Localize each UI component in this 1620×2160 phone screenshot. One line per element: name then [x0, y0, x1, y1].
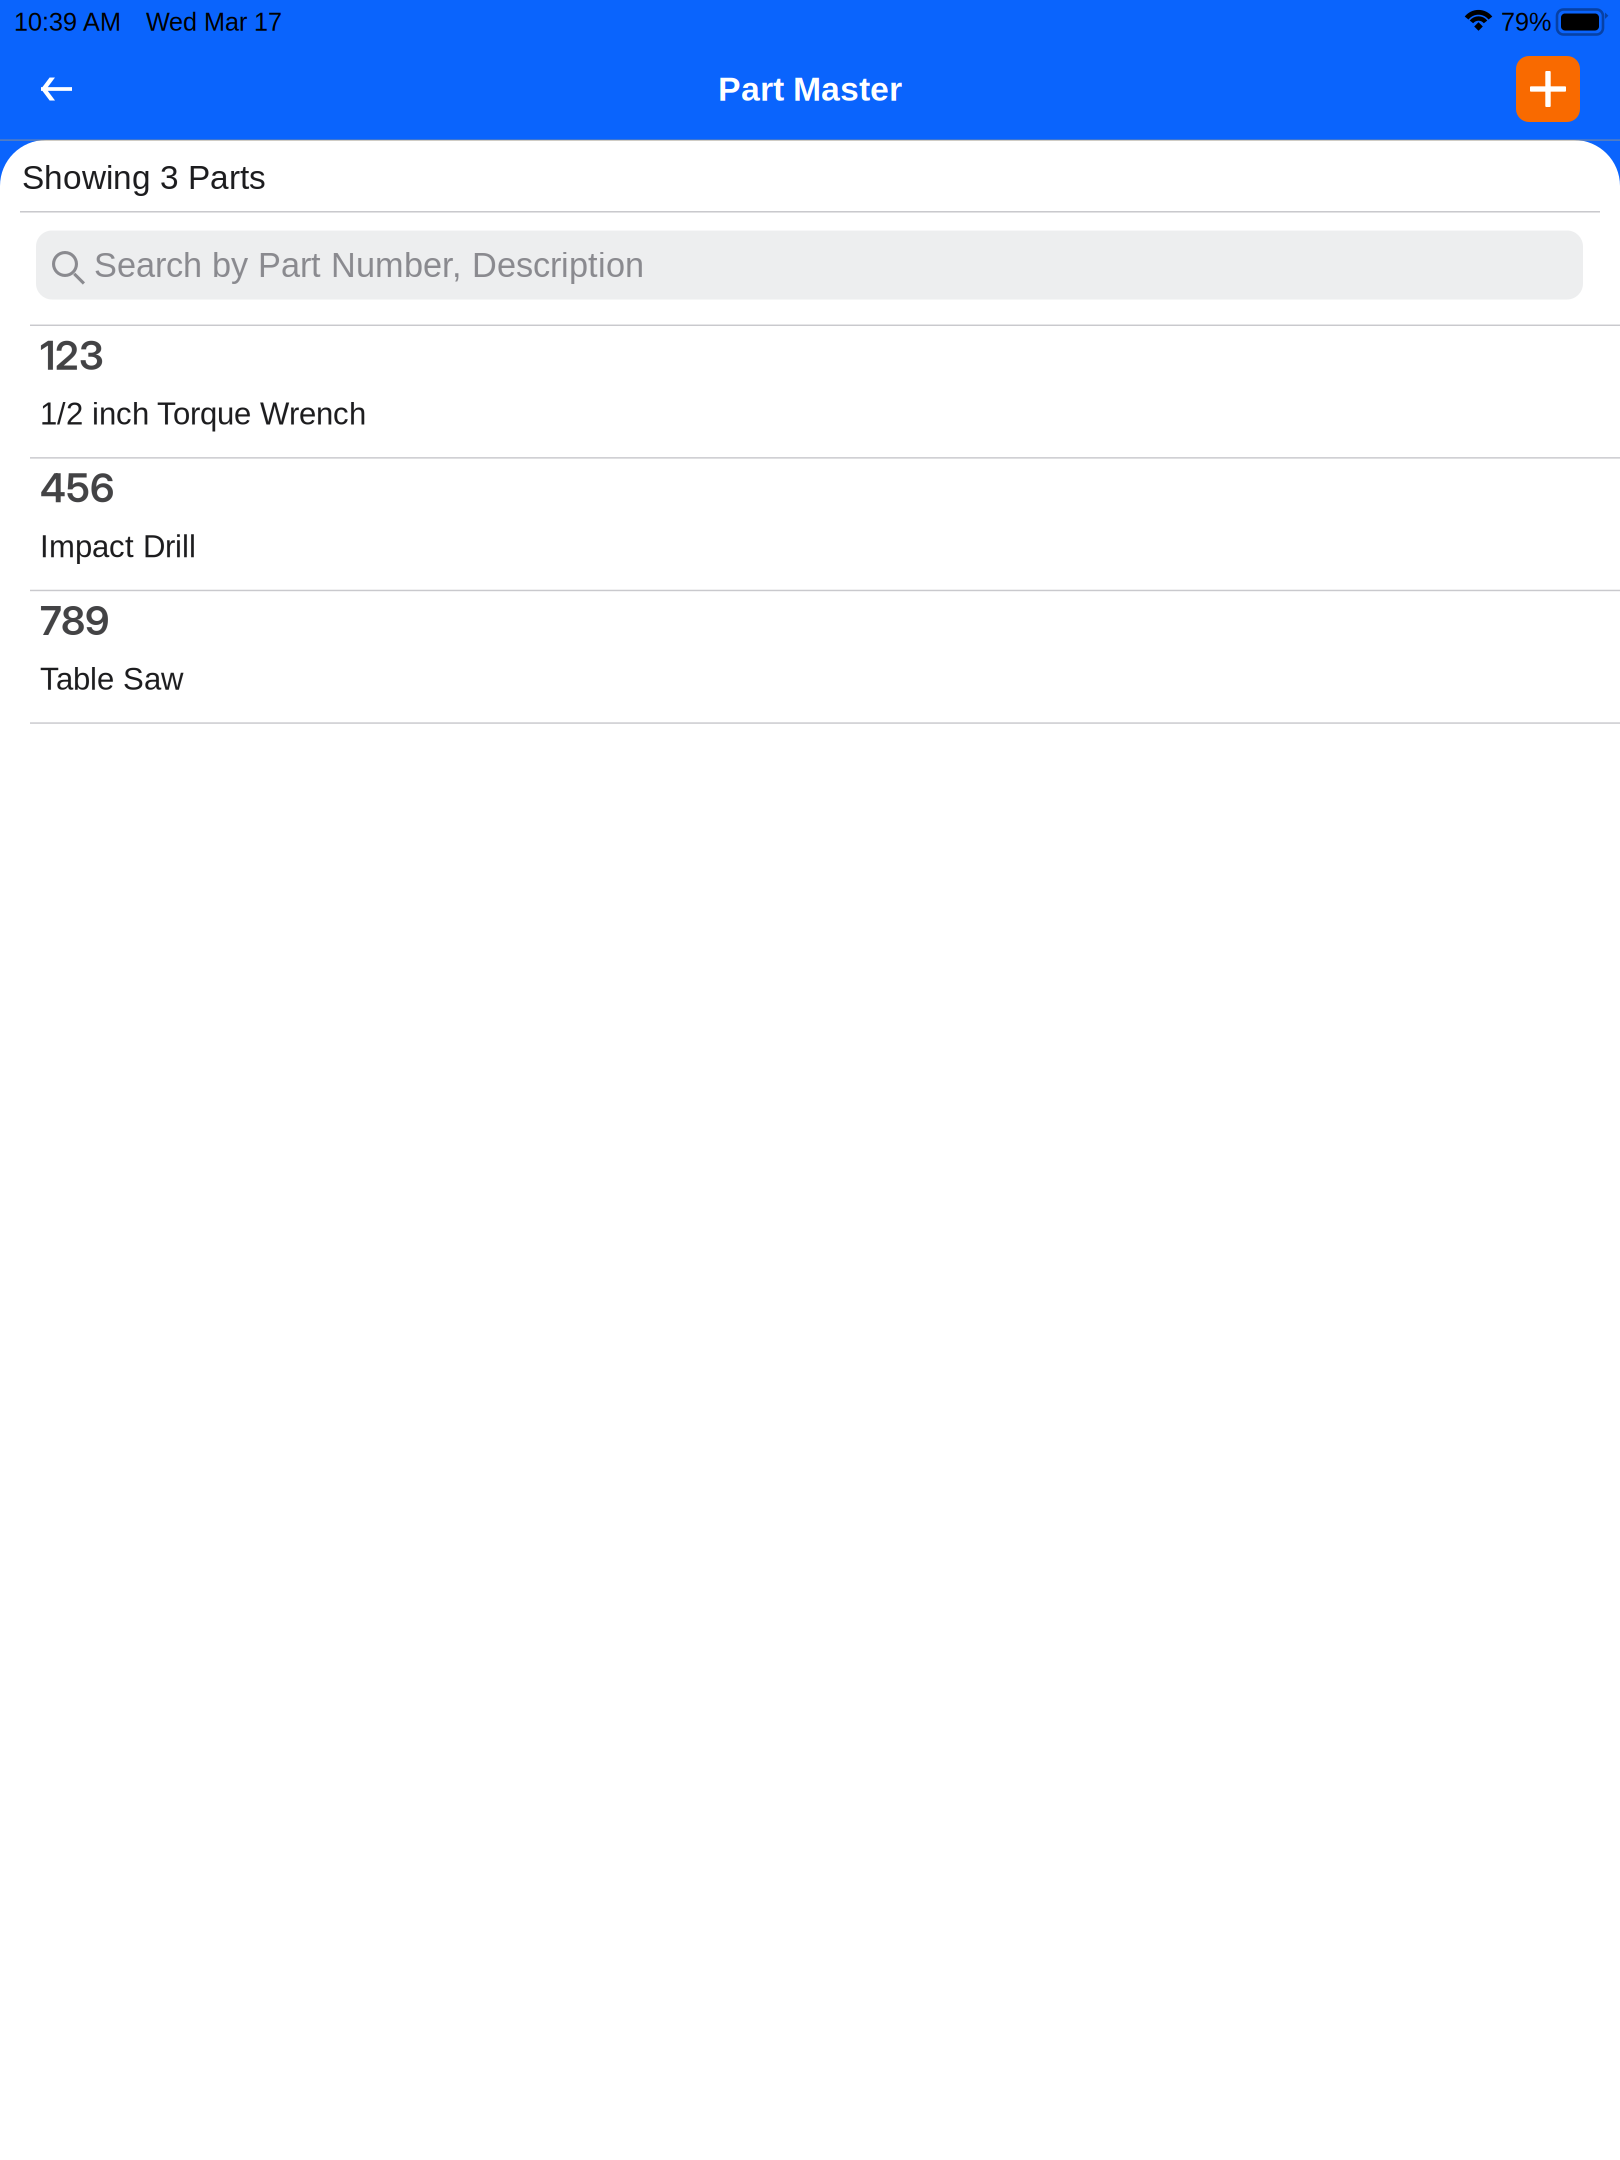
staticText: Search by Part Number, Description: [94, 246, 644, 284]
staticText: 10:39 AM: [14, 8, 121, 36]
staticText: Table Saw: [40, 662, 183, 696]
staticText: 789: [40, 596, 109, 645]
staticText: 79%: [1501, 8, 1552, 36]
staticText: Showing 3 Parts: [22, 159, 266, 196]
button[interactable]: Add part: [1516, 56, 1580, 128]
button[interactable]: 123: [0, 326, 1620, 457]
staticText: 456: [40, 464, 114, 512]
button[interactable]: Back: [0, 58, 97, 125]
staticText: Impact Drill: [40, 529, 196, 564]
staticText: Wed Mar 17: [146, 8, 282, 36]
button[interactable]: 456: [0, 459, 1620, 590]
staticText: Part Master: [718, 70, 902, 108]
button[interactable]: 789: [0, 591, 1620, 722]
staticText: 1/2 inch Torque Wrench: [40, 396, 366, 431]
staticText: 123: [40, 331, 104, 379]
